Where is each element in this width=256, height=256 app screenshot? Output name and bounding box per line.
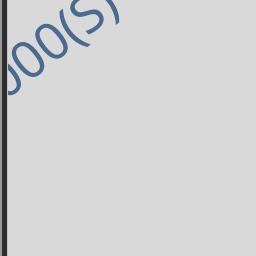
staticText: 000(S): [0, 0, 131, 113]
button[interactable]: Rotated label 000(S): [0, 0, 131, 113]
